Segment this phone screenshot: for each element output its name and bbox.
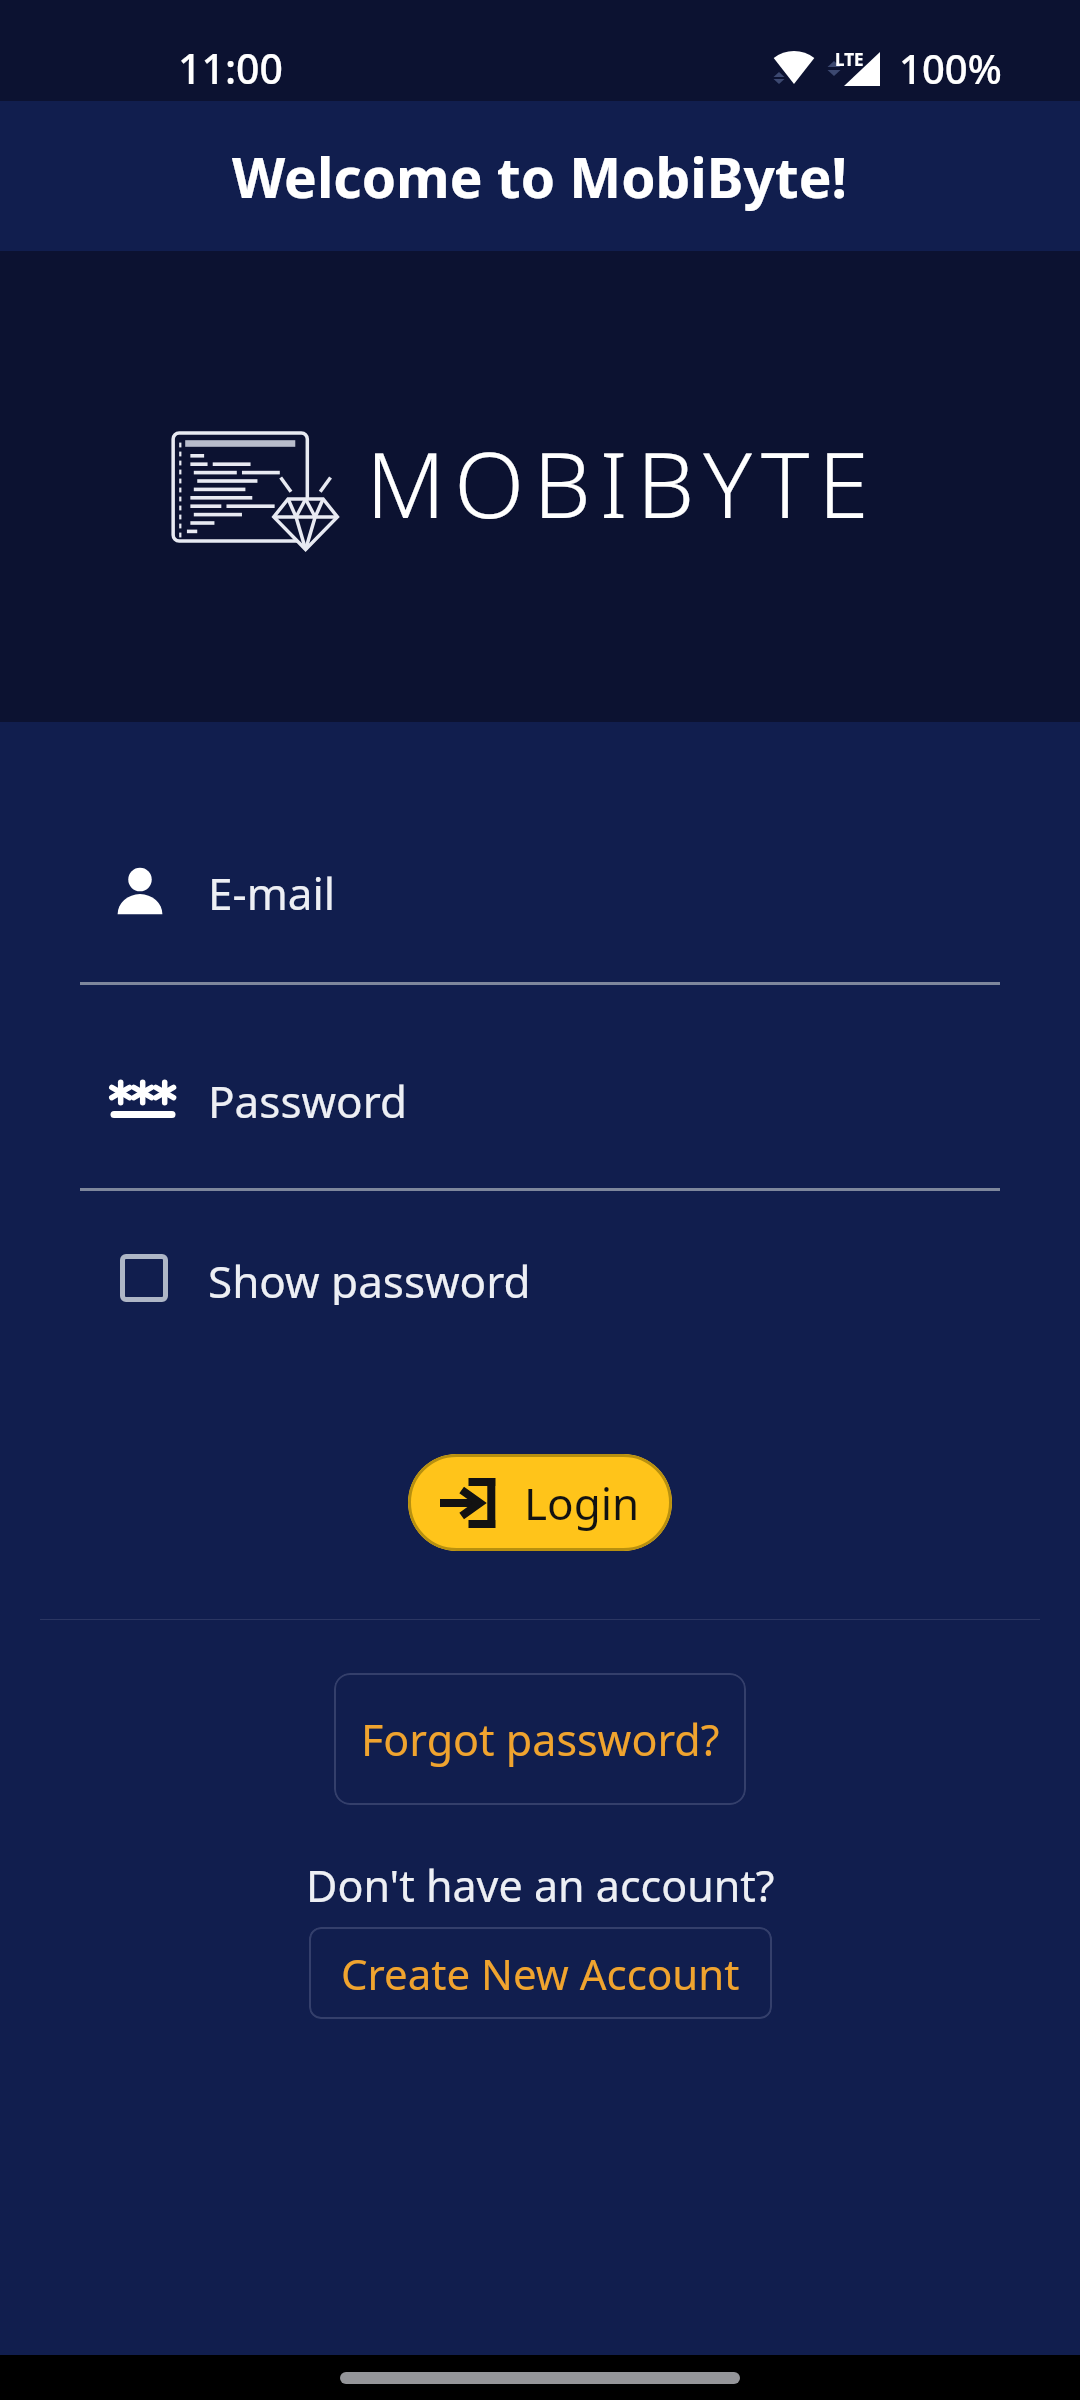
button[interactable]: Password [112, 1068, 1080, 1134]
button[interactable]: Forgot password? [334, 1673, 746, 1805]
button[interactable]: Login [408, 1454, 672, 1551]
staticText: Don't have an account? [306, 1856, 775, 1915]
staticText: 11:00 [178, 40, 283, 96]
staticText: Forgot password? [361, 1710, 720, 1769]
button[interactable]: Create New Account [309, 1927, 772, 2019]
staticText: Create New Account [341, 1945, 740, 2002]
staticText: 100% [899, 41, 1002, 95]
staticText: E-mail [208, 863, 336, 923]
staticText: Password [208, 1071, 408, 1131]
staticText: MOBIBYTE [366, 421, 878, 545]
staticText: LTE [835, 48, 864, 71]
button[interactable]: E-mail [112, 860, 1080, 926]
button[interactable]: Show password [120, 1251, 1080, 1305]
staticText: Show password [208, 1251, 531, 1305]
staticText: Login [524, 1473, 640, 1533]
staticText: Welcome to MobiByte! [232, 139, 848, 214]
